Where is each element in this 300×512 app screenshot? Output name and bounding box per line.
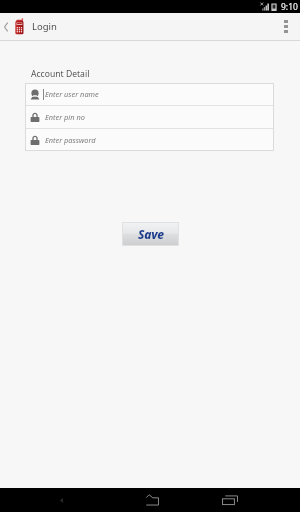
staticText: Account Detail	[31, 68, 90, 80]
button[interactable]: Recents	[207, 488, 255, 512]
staticText: 9:10	[281, 1, 298, 13]
button[interactable]: Save	[122, 222, 179, 246]
button[interactable]: Enter user name	[25, 83, 274, 105]
staticText: Enter pin no	[45, 112, 85, 122]
button[interactable]: More options	[272, 13, 300, 40]
staticText: Enter user name	[45, 89, 99, 99]
staticText: Enter password	[45, 135, 96, 145]
button[interactable]: Home	[128, 488, 176, 512]
button[interactable]: Enter pin no	[25, 106, 274, 128]
button[interactable]: Back	[0, 13, 14, 40]
staticText: Login	[32, 20, 57, 33]
staticText: Save	[138, 226, 164, 242]
button[interactable]: Enter password	[25, 129, 274, 151]
